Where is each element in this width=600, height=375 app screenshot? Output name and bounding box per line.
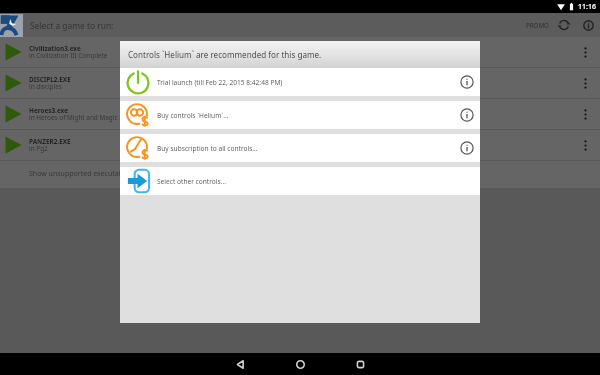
- button[interactable]: Refresh: [555, 16, 573, 34]
- staticText: Buy subscription to all controls...: [157, 144, 258, 153]
- button[interactable]: More options: [575, 68, 595, 98]
- staticText: 11:16: [578, 2, 596, 12]
- staticText: Heroes3.exe: [29, 106, 68, 115]
- button[interactable]: Info: [454, 69, 480, 95]
- staticText: Select other controls...: [157, 177, 226, 186]
- staticText: Show unsupported executables: [29, 169, 133, 179]
- staticText: DISCIPL2.EXE: [29, 75, 71, 84]
- button[interactable]: Heroes3.exe: [0, 99, 600, 129]
- staticText: PROMO: [526, 21, 549, 29]
- button[interactable]: More options: [575, 130, 595, 160]
- button[interactable]: About: [579, 16, 597, 34]
- button[interactable]: PANZER2.EXE: [0, 130, 600, 160]
- button[interactable]: Trial launch (till Feb 22, 2015 8:42:48 …: [120, 68, 480, 96]
- button[interactable]: Buy subscription to all controls...: [120, 134, 480, 162]
- staticText: Trial launch (till Feb 22, 2015 8:42:48 …: [157, 78, 283, 87]
- button[interactable]: Select other controls...: [120, 167, 480, 195]
- staticText: Civilization3.exe: [29, 44, 81, 53]
- button[interactable]: Recent apps: [330, 353, 390, 375]
- button[interactable]: Civilization3.exe: [0, 37, 600, 67]
- button[interactable]: More options: [575, 37, 595, 67]
- staticText: in Pg2: [29, 144, 48, 153]
- button[interactable]: Home: [270, 353, 330, 375]
- button[interactable]: More options: [575, 99, 595, 129]
- staticText: Controls `Helium` are recommended for th…: [128, 49, 322, 60]
- button[interactable]: DISCIPL2.EXE: [0, 68, 600, 98]
- button[interactable]: Back: [210, 353, 270, 375]
- staticText: Buy controls `Helium`...: [157, 111, 229, 120]
- staticText: in Civilization III Complete: [29, 51, 108, 60]
- button[interactable]: Info: [454, 102, 480, 128]
- staticText: Select a game to run:: [30, 20, 114, 31]
- staticText: in disciples: [29, 82, 62, 91]
- staticText: PANZER2.EXE: [29, 137, 71, 146]
- staticText: in Heroes of Might and Magic III Complet…: [29, 113, 157, 122]
- button[interactable]: Info: [454, 135, 480, 161]
- button[interactable]: Buy controls `Helium`...: [120, 101, 480, 129]
